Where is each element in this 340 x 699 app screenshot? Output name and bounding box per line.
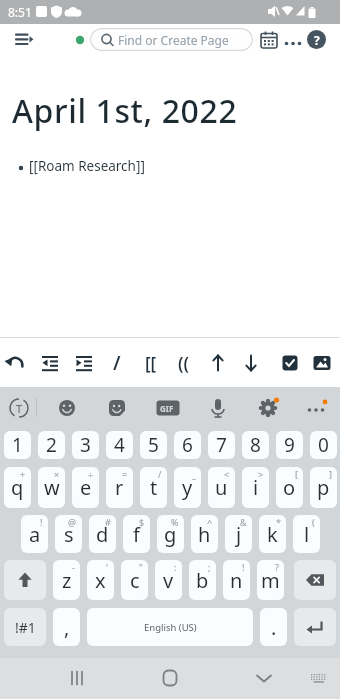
staticText: < [224, 468, 230, 480]
staticText: 0 [318, 432, 329, 458]
button[interactable]: m [257, 560, 284, 600]
button[interactable]: e [72, 467, 99, 508]
button[interactable] [257, 28, 281, 52]
staticText: l [304, 521, 310, 548]
staticText: c [130, 567, 140, 594]
button[interactable] [53, 394, 81, 422]
button[interactable] [302, 394, 330, 422]
button[interactable]: Find or Create Page [90, 28, 253, 51]
staticText: / [158, 468, 162, 480]
button[interactable]: n [223, 560, 250, 600]
button[interactable] [4, 560, 46, 600]
button[interactable]: c [121, 560, 148, 600]
button[interactable]: x [87, 560, 114, 600]
button[interactable]: z [53, 560, 80, 600]
staticText: u [215, 474, 228, 501]
staticText: % [171, 516, 179, 528]
button[interactable]: r [106, 467, 133, 508]
button[interactable]: 5 [140, 431, 167, 459]
button[interactable]: s [55, 515, 82, 553]
button[interactable]: t [140, 467, 167, 508]
button[interactable]: q [4, 467, 31, 508]
staticText: (( [178, 352, 190, 375]
button[interactable] [156, 664, 184, 692]
staticText: . [271, 614, 277, 641]
button[interactable]: w [38, 467, 65, 508]
button[interactable] [8, 26, 38, 54]
staticText: - [72, 561, 75, 573]
button[interactable]: T [5, 394, 33, 422]
staticText: [[ [145, 352, 157, 375]
staticText: ^ [207, 516, 213, 528]
button[interactable]: h [191, 515, 218, 553]
button[interactable]: l [293, 515, 320, 553]
button[interactable]: 9 [276, 431, 303, 459]
button[interactable] [254, 394, 282, 422]
button[interactable]: / [103, 349, 131, 377]
button[interactable]: k [259, 515, 286, 553]
button[interactable]: 6 [174, 431, 201, 459]
button[interactable] [70, 349, 98, 377]
button[interactable]: !#1 [4, 608, 46, 646]
staticText: !#1 [15, 618, 36, 637]
button[interactable] [204, 349, 232, 377]
button[interactable]: 4 [106, 431, 133, 459]
button[interactable] [250, 664, 278, 692]
staticText: , [64, 614, 70, 641]
button[interactable] [36, 349, 64, 377]
staticText: w [44, 474, 60, 501]
button[interactable] [0, 349, 28, 377]
button[interactable]: j [225, 515, 252, 553]
staticText: ÷ [88, 468, 94, 480]
button[interactable]: d [89, 515, 116, 553]
button[interactable]: [[ [137, 349, 165, 377]
staticText: ! [40, 516, 43, 528]
button[interactable] [294, 560, 336, 600]
button[interactable]: . [260, 608, 287, 646]
button[interactable]: 2 [38, 431, 65, 459]
button[interactable] [294, 608, 336, 646]
button[interactable] [308, 349, 336, 377]
button[interactable]: o [276, 467, 303, 508]
button[interactable]: b [189, 560, 216, 600]
button[interactable]: 3 [72, 431, 99, 459]
button[interactable]: 1 [4, 431, 31, 459]
button[interactable] [304, 666, 332, 690]
staticText: [ [295, 468, 298, 480]
staticText: t [150, 474, 158, 501]
staticText: 6 [182, 432, 193, 458]
button[interactable] [154, 394, 182, 422]
staticText: [[Roam Research]] [29, 157, 145, 175]
button[interactable]: (( [170, 349, 198, 377]
staticText: n [230, 567, 243, 594]
button[interactable] [281, 28, 305, 52]
staticText: m [261, 567, 280, 594]
staticText: 1 [12, 432, 23, 458]
button[interactable]: v [155, 560, 182, 600]
button[interactable] [204, 394, 232, 422]
button[interactable]: a [21, 515, 48, 553]
staticText: ] [329, 468, 332, 480]
button[interactable]: p [310, 467, 337, 508]
button[interactable]: English (US) [87, 608, 253, 646]
staticText: ? [275, 561, 279, 573]
button[interactable]: 7 [208, 431, 235, 459]
button[interactable]: i [242, 467, 269, 508]
staticText: r [115, 474, 124, 501]
button[interactable] [63, 664, 91, 692]
staticText: × [54, 468, 60, 480]
button[interactable] [103, 394, 131, 422]
button[interactable]: f [123, 515, 150, 553]
button[interactable]: 0 [310, 431, 337, 459]
button[interactable]: ? [307, 30, 326, 49]
button[interactable] [237, 349, 265, 377]
button[interactable] [276, 349, 304, 377]
staticText: ? [314, 32, 320, 48]
staticText: _ [192, 468, 196, 480]
button[interactable]: u [208, 467, 235, 508]
staticText: 4 [114, 432, 125, 458]
button[interactable]: y [174, 467, 201, 508]
button[interactable]: 8 [242, 431, 269, 459]
button[interactable]: g [157, 515, 184, 553]
button[interactable]: , [53, 608, 80, 646]
